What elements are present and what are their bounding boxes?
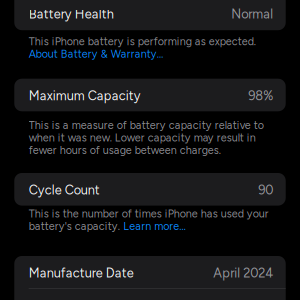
- staticText: Cycle Count: [29, 182, 100, 198]
- staticText: Learn more…: [123, 220, 186, 233]
- staticText: April 2024: [213, 265, 273, 281]
- staticText: This is a measure of battery capacity re…: [29, 119, 264, 132]
- staticText: 90: [258, 182, 273, 198]
- button[interactable]: Cycle Count: [14, 174, 286, 206]
- button[interactable]: About Battery & Warranty…: [29, 48, 164, 60]
- staticText: Normal: [231, 6, 273, 22]
- staticText: Battery Health: [29, 6, 114, 22]
- button[interactable]: Maximum Capacity: [14, 79, 286, 112]
- staticText: when it was new. Lower capacity may resu…: [29, 131, 256, 144]
- button[interactable]: Battery Health: [14, 0, 286, 30]
- staticText: This iPhone battery is performing as exp…: [29, 35, 256, 48]
- button[interactable]: Manufacture Date: [14, 257, 286, 289]
- staticText: battery's capacity.: [29, 220, 120, 233]
- staticText: Maximum Capacity: [29, 88, 141, 103]
- staticText: 98%: [248, 88, 273, 103]
- staticText: Manufacture Date: [29, 265, 134, 281]
- staticText: This is the number of times iPhone has u…: [29, 207, 269, 220]
- button[interactable]: Learn more…: [123, 220, 186, 232]
- staticText: About Battery & Warranty…: [29, 47, 164, 60]
- staticText: fewer hours of usage between charges.: [29, 144, 221, 157]
